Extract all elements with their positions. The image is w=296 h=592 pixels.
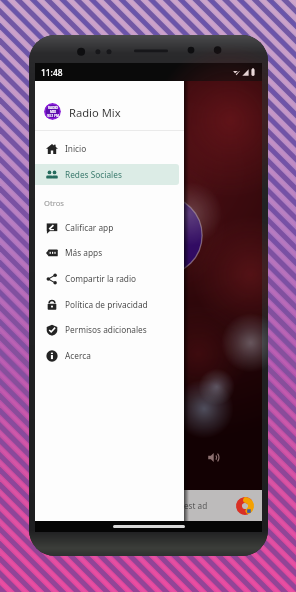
button[interactable]: Permisos adicionales (35, 319, 179, 340)
staticText: 11:48 (41, 67, 63, 78)
button[interactable]: Volume (208, 452, 219, 463)
staticText: Más apps (65, 247, 103, 258)
staticText: Compartir la radio (65, 273, 137, 284)
staticText: Otros (44, 198, 64, 208)
button[interactable]: Más apps (35, 242, 179, 263)
staticText: RADIO MIX 93.1 FM (47, 106, 59, 118)
button[interactable]: Política de privacidad (35, 294, 179, 315)
button[interactable]: Redes Sociales (35, 164, 179, 185)
button[interactable]: Acerca (35, 345, 179, 366)
staticText: Política de privacidad (65, 299, 148, 310)
staticText: Permisos adicionales (65, 324, 147, 335)
staticText: Radio Mix (69, 105, 121, 120)
staticText: test ad (181, 500, 208, 511)
button[interactable]: test ad (35, 490, 262, 521)
button[interactable]: Calificar app (35, 217, 179, 238)
staticText: Redes Sociales (65, 169, 122, 180)
staticText: Calificar app (65, 222, 114, 233)
staticText: Acerca (65, 350, 91, 361)
button[interactable]: Compartir la radio (35, 268, 179, 289)
button[interactable]: Inicio (35, 138, 179, 159)
staticText: Inicio (65, 143, 87, 154)
